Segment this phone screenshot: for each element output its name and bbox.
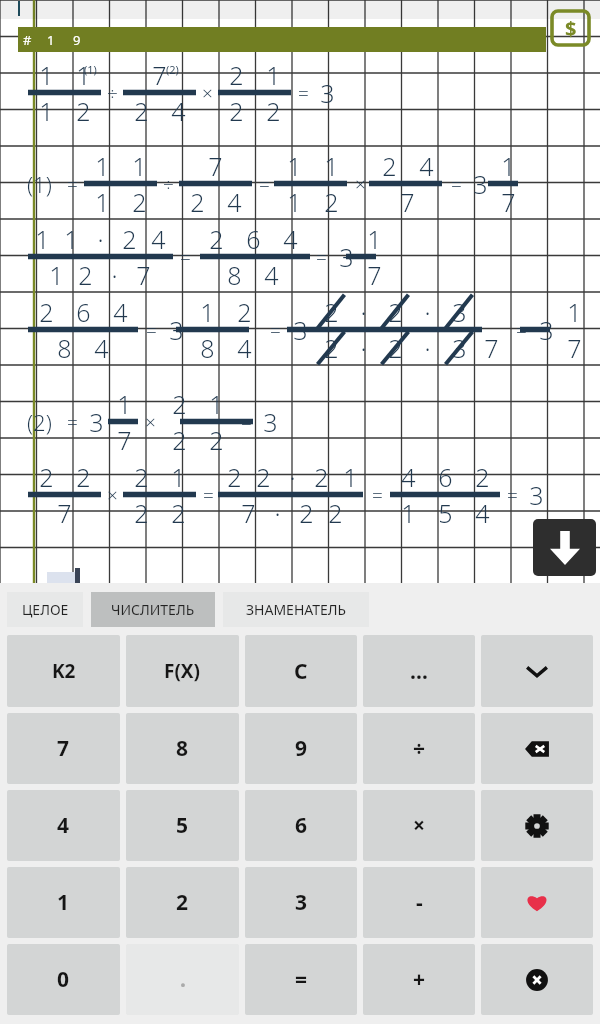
button[interactable]: C [245,635,357,707]
staticText: 5 [438,496,453,530]
staticText: 2 [314,460,329,494]
staticText: 7 [208,149,223,183]
staticText: 3 [169,313,184,347]
button[interactable]: 7 [7,713,120,784]
staticText: = [295,965,308,994]
button[interactable]: F(X) [126,635,239,707]
button[interactable]: Backspace [481,713,593,784]
staticText: 7 [57,734,70,763]
staticText: 7 [400,185,415,219]
staticText: = [507,482,518,508]
staticText: 2 [209,222,224,256]
staticText: $ [565,15,577,42]
staticText: = [146,317,157,343]
staticText: · [424,295,431,329]
staticText: 1 [287,149,302,183]
staticText: 3 [293,313,308,347]
staticText: · [424,331,431,365]
staticText: 2 [299,496,314,530]
button[interactable]: 2 [126,867,239,938]
button[interactable]: # [18,27,546,52]
button[interactable]: Clear [481,944,593,1015]
staticText: (2) [27,407,52,437]
staticText: 2 [475,460,490,494]
staticText: 1 [39,94,54,128]
button[interactable]: Favourite [481,867,593,938]
staticText: 8 [57,331,72,365]
staticText: × [107,482,118,508]
staticText: 2 [190,185,205,219]
staticText: 2 [132,185,147,219]
button[interactable]: = [245,944,357,1015]
staticText: = [451,171,462,197]
staticText: 4 [151,222,166,256]
staticText: 1 [209,387,224,421]
button[interactable]: - [363,867,475,938]
staticText: 2 [176,888,189,917]
button[interactable]: 6 [245,790,357,861]
button[interactable]: 1 [7,867,120,938]
staticText: 4 [419,149,434,183]
staticText: = [241,409,252,435]
staticText: 8 [227,258,242,292]
staticText: = [259,171,270,197]
staticText: = [67,409,78,435]
staticText: = [270,317,281,343]
button[interactable]: 8 [126,713,239,784]
button[interactable]: K2 [7,635,120,707]
staticText: 1 [567,295,582,329]
staticText: ЦЕЛОЕ [22,600,69,619]
staticText: 7 [367,258,382,292]
staticText: 3 [339,240,354,274]
button[interactable]: Settings [481,790,593,861]
staticText: 1 [76,58,91,92]
staticText: = [516,317,527,343]
staticText: 1 [57,888,70,917]
staticText: - [416,888,423,917]
button[interactable]: ÷ [363,713,475,784]
staticText: 6 [438,460,453,494]
staticText: 4 [283,222,298,256]
staticText: 1 [132,149,147,183]
staticText: ЧИСЛИТЕЛЬ [111,600,195,619]
button[interactable]: Hide keyboard [481,635,593,707]
staticText: 5 [176,811,189,840]
button[interactable]: ЧИСЛИТЕЛЬ [91,592,215,627]
button[interactable]: … [363,635,475,707]
staticText: (1) [84,62,97,77]
button[interactable]: Scroll down [533,519,596,576]
button[interactable]: Purchase [550,9,591,47]
staticText: 6 [76,295,91,329]
button[interactable]: 5 [126,790,239,861]
staticText: 2 [388,295,403,329]
staticText: 4 [94,331,109,365]
staticText: = [203,482,214,508]
staticText: 4 [227,185,242,219]
staticText: · [97,222,104,256]
button[interactable]: 3 [245,867,357,938]
staticText: × [145,409,156,435]
button[interactable]: 9 [245,713,357,784]
staticText: 2 [39,295,54,329]
staticText: · [289,460,296,494]
staticText: 1 [287,185,302,219]
button[interactable]: 0 [7,944,120,1015]
staticText: 1 [501,149,516,183]
button[interactable]: + [363,944,475,1015]
staticText: 9 [295,734,308,763]
button[interactable]: ЦЕЛОЕ [7,592,83,627]
staticText: 3 [473,167,488,201]
staticText: 3 [263,405,278,439]
staticText: 1 [64,222,79,256]
staticText: 2 [76,94,91,128]
button[interactable]: ЗНАМЕНАТЕЛЬ [223,592,369,627]
staticText: 2 [172,423,187,457]
staticText: ÷ [163,171,174,197]
staticText: 2 [227,460,242,494]
button[interactable]: 4 [7,790,120,861]
staticText: 7 [567,331,582,365]
button[interactable]: × [363,790,475,861]
staticText: · [360,295,367,329]
staticText: 4 [401,460,416,494]
